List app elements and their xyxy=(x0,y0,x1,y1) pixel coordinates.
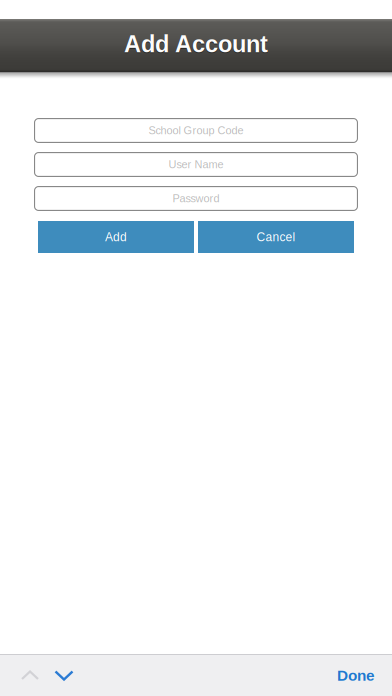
staticText: Add Account xyxy=(124,31,268,57)
staticText: User Name xyxy=(168,158,223,171)
button[interactable]: Cancel xyxy=(198,221,354,253)
staticText: Add Account xyxy=(124,32,268,58)
staticText: Add xyxy=(105,230,127,244)
button[interactable]: Done xyxy=(337,667,392,684)
staticText: Password xyxy=(172,192,219,205)
staticText: School Group Code xyxy=(148,124,243,137)
button[interactable]: Next field xyxy=(43,654,85,696)
staticText: Done xyxy=(337,667,375,684)
button[interactable]: Add xyxy=(38,221,194,253)
staticText: Cancel xyxy=(256,230,295,244)
button[interactable]: Previous field xyxy=(9,654,51,696)
